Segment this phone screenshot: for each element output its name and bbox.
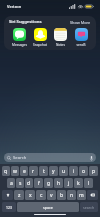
- staticText: y: [52, 168, 55, 175]
- button[interactable]: w: [11, 166, 19, 176]
- button[interactable]: u: [59, 166, 68, 176]
- button[interactable]: space: [17, 202, 79, 212]
- staticText: u: [62, 168, 66, 175]
- button[interactable]: y: [49, 166, 58, 176]
- button[interactable]: r: [29, 166, 38, 176]
- staticText: search: [83, 205, 95, 210]
- button[interactable]: q: [2, 166, 10, 176]
- button[interactable]: h: [54, 178, 63, 188]
- button[interactable]: p: [89, 166, 98, 176]
- staticText: p: [92, 168, 96, 175]
- staticText: o: [82, 168, 86, 175]
- staticText: i: [73, 168, 75, 175]
- staticText: z: [18, 192, 21, 199]
- button[interactable]: Snapchat: [30, 28, 50, 47]
- staticText: send5: [76, 43, 86, 47]
- staticText: space: [43, 205, 53, 210]
- staticText: j: [68, 180, 70, 187]
- staticText: c: [40, 192, 43, 199]
- button[interactable]: f: [34, 178, 43, 188]
- button[interactable]: Show More: [70, 20, 91, 25]
- button[interactable]: i: [69, 166, 78, 176]
- button[interactable]: e: [20, 166, 28, 176]
- staticText: e: [23, 168, 26, 175]
- staticText: q: [4, 168, 8, 175]
- staticText: b: [60, 192, 64, 199]
- staticText: w: [13, 168, 17, 175]
- button[interactable]: d: [25, 178, 33, 188]
- button[interactable]: Search: [4, 153, 96, 162]
- button[interactable]: j: [64, 178, 73, 188]
- staticText: x: [29, 192, 32, 199]
- staticText: k: [77, 180, 80, 187]
- other: Dictate: [90, 156, 93, 161]
- staticText: f: [38, 180, 40, 187]
- staticText: g: [47, 180, 51, 187]
- staticText: Search: [13, 155, 27, 161]
- button[interactable]: n: [67, 190, 76, 200]
- button[interactable]: c: [36, 190, 46, 200]
- staticText: l: [88, 180, 90, 187]
- staticText: 123: [6, 205, 12, 210]
- staticText: s: [19, 180, 22, 187]
- button[interactable]: s: [16, 178, 24, 188]
- button[interactable]: send5: [71, 28, 91, 47]
- button[interactable]: Messages: [9, 28, 29, 47]
- staticText: d: [27, 180, 31, 187]
- button[interactable]: Shift: [2, 190, 13, 200]
- button[interactable]: Notes: [50, 28, 70, 47]
- staticText: Notes: [56, 43, 65, 47]
- staticText: r: [32, 168, 35, 175]
- button[interactable]: l: [84, 178, 93, 188]
- staticText: Verizon: [7, 4, 22, 9]
- staticText: v: [50, 192, 53, 199]
- button[interactable]: Backspace: [87, 190, 98, 200]
- button[interactable]: o: [79, 166, 88, 176]
- button[interactable]: g: [44, 178, 53, 188]
- staticText: Show More: [70, 20, 91, 25]
- staticText: Messages: [12, 43, 27, 47]
- staticText: m: [79, 192, 84, 199]
- button[interactable]: k: [74, 178, 83, 188]
- staticText: t: [43, 168, 45, 175]
- button[interactable]: search: [80, 202, 98, 212]
- button[interactable]: b: [57, 190, 66, 200]
- staticText: Snapchat: [33, 43, 47, 47]
- staticText: n: [70, 192, 74, 199]
- button[interactable]: a: [7, 178, 15, 188]
- button[interactable]: m: [77, 190, 86, 200]
- staticText: Siri Suggestions: [9, 19, 42, 25]
- button[interactable]: 123: [2, 202, 16, 212]
- button[interactable]: z: [14, 190, 24, 200]
- staticText: a: [10, 180, 13, 187]
- staticText: h: [57, 180, 61, 187]
- button[interactable]: t: [39, 166, 48, 176]
- button[interactable]: v: [47, 190, 56, 200]
- button[interactable]: x: [25, 190, 35, 200]
